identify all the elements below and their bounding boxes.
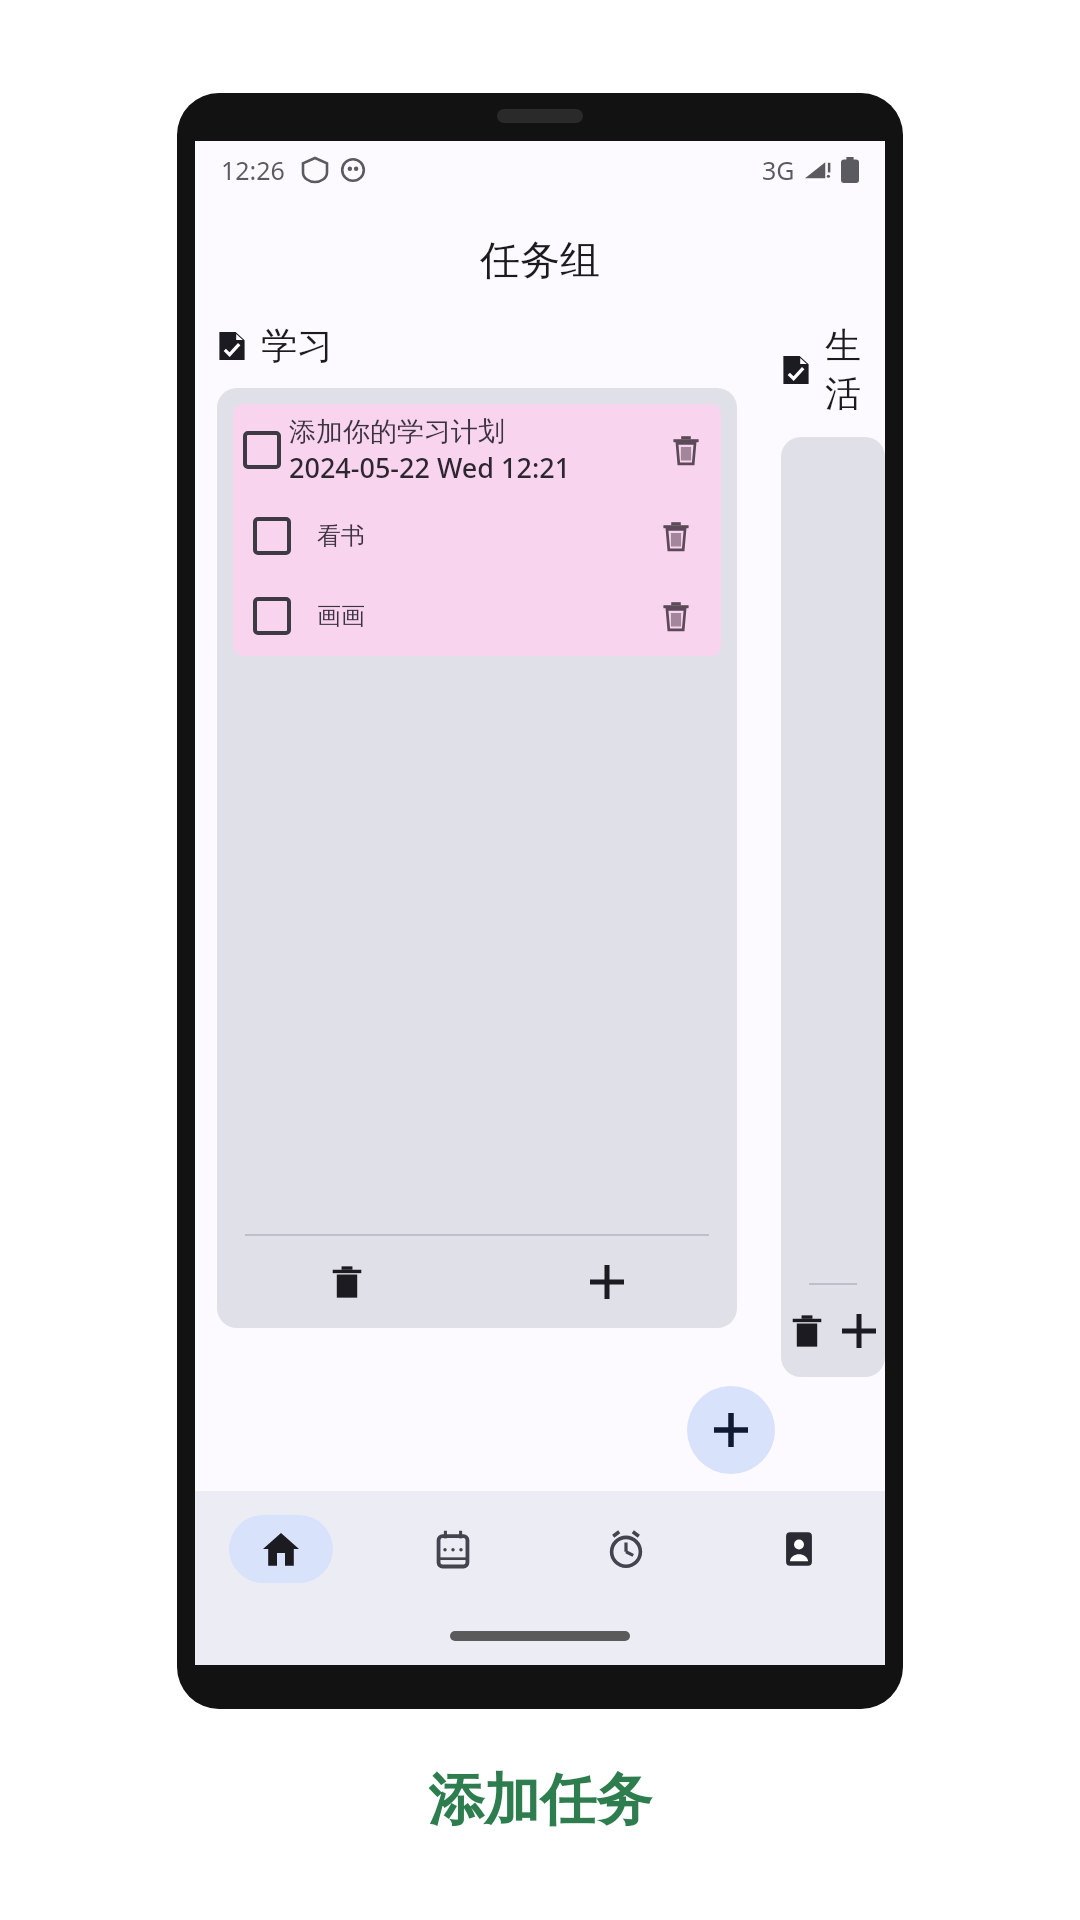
button[interactable]: Delete task xyxy=(653,513,699,559)
staticText: 3G xyxy=(762,153,795,187)
button[interactable]: 看书 xyxy=(233,496,721,576)
button[interactable]: 画画 xyxy=(233,576,721,656)
button[interactable]: Delete group xyxy=(781,1285,833,1377)
staticText: 学习 xyxy=(261,323,333,368)
button[interactable]: Add task group xyxy=(687,1386,775,1474)
staticText: 2024-05-22 Wed 12:21 xyxy=(289,449,571,486)
staticText: 生活 xyxy=(825,323,885,417)
button[interactable]: Calendar xyxy=(367,1491,539,1607)
button[interactable]: Home xyxy=(195,1491,367,1607)
button[interactable]: Add task xyxy=(477,1236,737,1328)
button[interactable]: 添加你的学习计划 xyxy=(233,404,721,496)
button[interactable]: Delete task xyxy=(663,427,709,473)
staticText: 看书 xyxy=(317,521,365,551)
staticText: 任务组 xyxy=(480,235,600,285)
button[interactable]: Alarm xyxy=(539,1491,712,1607)
button[interactable]: Add task xyxy=(833,1285,885,1377)
staticText: 画画 xyxy=(317,601,365,631)
staticText: 添加你的学习计划 xyxy=(289,415,505,449)
staticText: 12:26 xyxy=(221,153,285,187)
button[interactable]: Delete task xyxy=(653,593,699,639)
button[interactable]: Profile xyxy=(712,1491,885,1607)
staticText: 添加任务 xyxy=(428,1765,652,1836)
button[interactable]: Delete group xyxy=(217,1236,477,1328)
